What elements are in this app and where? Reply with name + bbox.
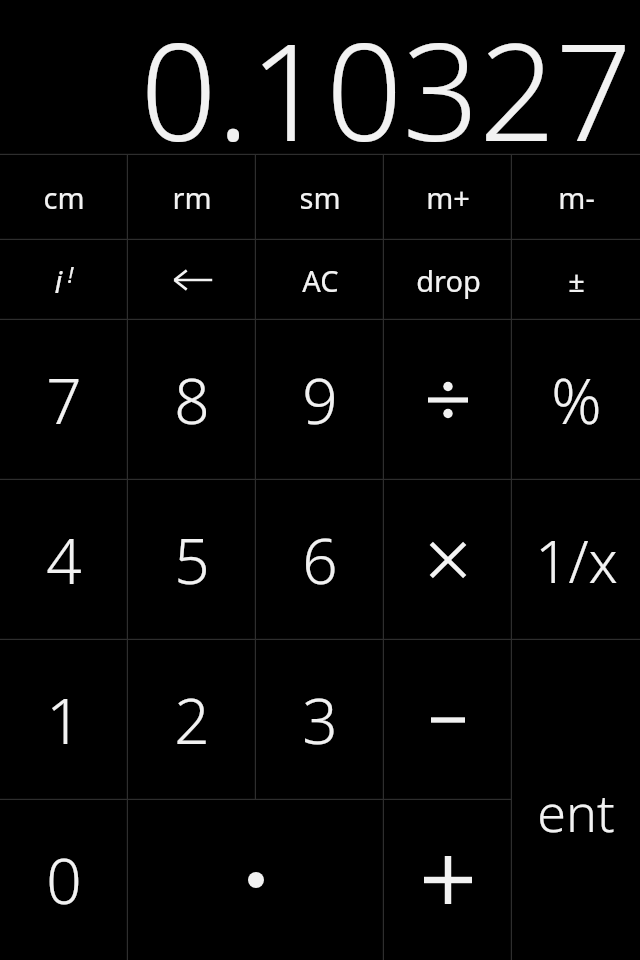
staticText: i ! bbox=[54, 259, 74, 302]
button[interactable]: Minus bbox=[384, 640, 512, 800]
staticText: 5 bbox=[174, 518, 210, 602]
button[interactable]: 5 bbox=[128, 480, 256, 640]
staticText: 1 bbox=[46, 678, 82, 762]
button[interactable]: memory minus bbox=[512, 155, 640, 240]
button[interactable]: 4 bbox=[0, 480, 128, 640]
staticText: 6 bbox=[302, 518, 338, 602]
button[interactable]: clear all bbox=[256, 240, 384, 320]
button[interactable]: ent bbox=[512, 640, 640, 960]
staticText: ent bbox=[537, 776, 615, 847]
button[interactable]: 1 bbox=[0, 640, 128, 800]
button[interactable]: 7 bbox=[0, 320, 128, 480]
staticText: m- bbox=[558, 178, 595, 217]
staticText: ± bbox=[568, 261, 585, 300]
staticText: cm bbox=[43, 178, 85, 217]
staticText: drop bbox=[416, 261, 481, 300]
staticText: sm bbox=[299, 178, 341, 217]
button[interactable]: Multiply bbox=[384, 480, 512, 640]
staticText: 7 bbox=[46, 358, 82, 442]
button[interactable]: 6 bbox=[256, 480, 384, 640]
button[interactable]: store memory bbox=[256, 155, 384, 240]
staticText: AC bbox=[302, 261, 339, 300]
staticText: rm bbox=[172, 178, 212, 217]
staticText: m+ bbox=[426, 178, 470, 217]
button[interactable]: Backspace bbox=[128, 240, 256, 320]
button[interactable]: memory plus bbox=[384, 155, 512, 240]
button[interactable]: 9 bbox=[256, 320, 384, 480]
staticText: 0 bbox=[46, 838, 82, 922]
staticText: % bbox=[551, 358, 602, 442]
staticText: 9 bbox=[302, 358, 338, 442]
button[interactable]: plus minus bbox=[512, 240, 640, 320]
button[interactable]: decimal point bbox=[128, 800, 384, 960]
button[interactable]: 2 bbox=[128, 640, 256, 800]
staticText: 8 bbox=[174, 358, 210, 442]
button[interactable]: recall memory bbox=[128, 155, 256, 240]
button[interactable]: 0 bbox=[0, 800, 128, 960]
staticText: 3 bbox=[302, 678, 338, 762]
button[interactable]: factorial bbox=[0, 240, 128, 320]
button[interactable]: clear memory bbox=[0, 155, 128, 240]
staticText: 1/x bbox=[535, 521, 618, 600]
button[interactable]: reciprocal bbox=[512, 480, 640, 640]
staticText: 2 bbox=[174, 678, 210, 762]
button[interactable]: drop bbox=[384, 240, 512, 320]
button[interactable]: Divide bbox=[384, 320, 512, 480]
staticText: 4 bbox=[46, 518, 82, 602]
button[interactable]: Plus bbox=[384, 800, 512, 960]
button[interactable]: percent bbox=[512, 320, 640, 480]
staticText: 0.10327 bbox=[140, 0, 632, 153]
button[interactable]: 3 bbox=[256, 640, 384, 800]
button[interactable]: 8 bbox=[128, 320, 256, 480]
